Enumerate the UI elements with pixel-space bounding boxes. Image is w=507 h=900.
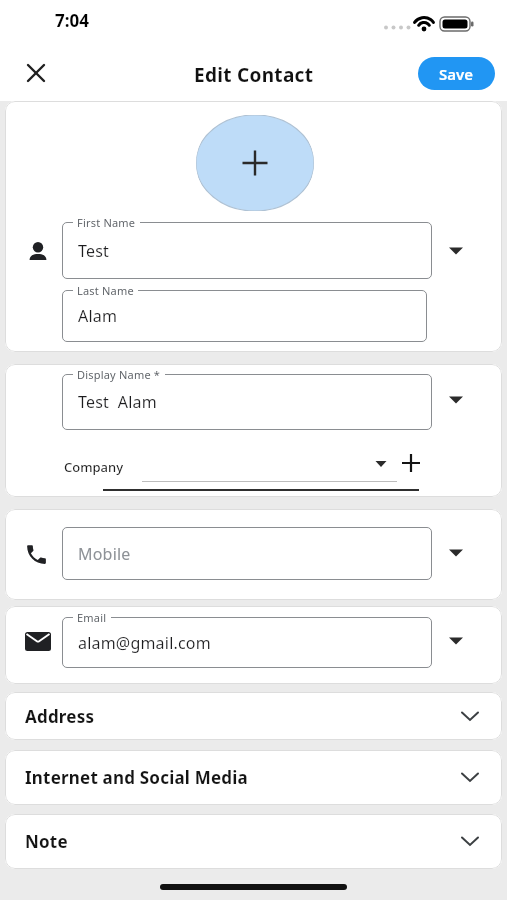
staticText: Edit Contact bbox=[194, 62, 314, 88]
button[interactable] bbox=[22, 59, 50, 87]
button[interactable] bbox=[402, 454, 420, 472]
staticText: Test bbox=[78, 240, 110, 262]
staticText: First Name bbox=[77, 215, 136, 230]
staticText: Save bbox=[439, 64, 474, 84]
button[interactable]: Address bbox=[5, 692, 502, 740]
button[interactable]: Save bbox=[418, 57, 495, 90]
staticText: Address bbox=[25, 705, 95, 728]
button[interactable]: Test bbox=[62, 215, 432, 279]
staticText: alam@gmail.com bbox=[78, 632, 211, 654]
button[interactable] bbox=[448, 247, 464, 255]
staticText: Last Name bbox=[77, 283, 134, 298]
staticText: Alam bbox=[78, 305, 118, 327]
staticText: Email bbox=[77, 610, 107, 625]
button[interactable] bbox=[448, 396, 464, 404]
button[interactable]: Company bbox=[64, 458, 124, 476]
button[interactable] bbox=[373, 460, 389, 468]
button[interactable]: Internet and Social Media bbox=[5, 750, 502, 805]
staticText: Test Alam bbox=[78, 391, 157, 413]
button[interactable] bbox=[448, 549, 464, 557]
staticText: Mobile bbox=[78, 543, 131, 565]
button[interactable]: alam@gmail.com bbox=[62, 610, 432, 668]
button[interactable]: Test Alam bbox=[62, 367, 432, 430]
staticText: Note bbox=[25, 830, 68, 853]
button[interactable] bbox=[448, 637, 464, 645]
staticText: Internet and Social Media bbox=[25, 766, 248, 789]
button[interactable]: Alam bbox=[62, 283, 427, 342]
button[interactable] bbox=[196, 115, 314, 211]
staticText: Display Name * bbox=[77, 367, 161, 382]
button[interactable]: Note bbox=[5, 814, 502, 869]
button[interactable]: Mobile bbox=[62, 527, 432, 580]
staticText: 7:04 bbox=[55, 9, 89, 32]
